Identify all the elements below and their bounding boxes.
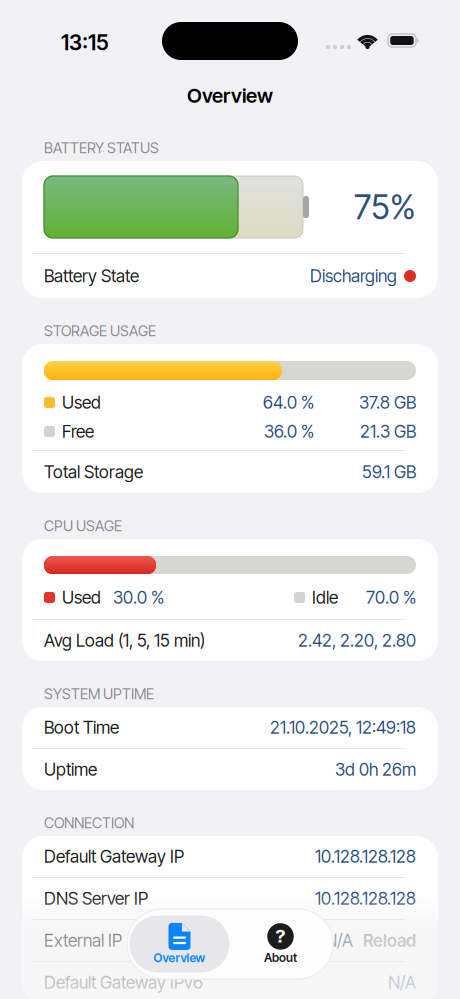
button[interactable]: Overview	[129, 915, 229, 972]
staticText: 3d 0h 26m	[335, 759, 416, 780]
staticText: Used	[62, 392, 101, 413]
staticText: BATTERY STATUS	[44, 139, 159, 157]
staticText: Free	[62, 421, 94, 442]
staticText: 13:15	[61, 30, 109, 55]
staticText: Overview	[153, 951, 205, 965]
staticText: ?	[275, 925, 285, 947]
staticText: 64.0 %	[263, 392, 314, 413]
staticText: 37.8 GB	[359, 392, 416, 413]
staticText: STORAGE USAGE	[44, 322, 156, 340]
staticText: CONNECTION	[44, 814, 134, 832]
staticText: 36.0 %	[264, 421, 314, 442]
button[interactable]: ?	[230, 915, 330, 972]
staticText: External IP	[44, 930, 122, 951]
staticText: N/A	[325, 930, 353, 951]
staticText: 2.42, 2.20, 2.80	[298, 630, 416, 651]
staticText: DNS Server IP	[44, 888, 148, 909]
staticText: Total Storage	[44, 462, 143, 482]
staticText: Default Gateway IP	[44, 846, 184, 867]
staticText: Discharging	[310, 266, 397, 286]
button[interactable]: Reload	[353, 930, 416, 951]
staticText: 21.10.2025, 12:49:18	[270, 717, 416, 738]
staticText: 21.3 GB	[360, 421, 416, 442]
staticText: CPU USAGE	[44, 517, 122, 535]
staticText: About	[264, 951, 297, 965]
staticText: SYSTEM UPTIME	[44, 685, 154, 703]
staticText: 30.0 %	[113, 587, 164, 608]
staticText: 10.128.128.128	[315, 846, 416, 867]
staticText: N/A	[388, 972, 416, 993]
staticText: Reload	[363, 930, 416, 951]
staticText: Avg Load (1, 5, 15 min)	[44, 630, 205, 651]
staticText: Default Gateway IPv6	[44, 972, 203, 993]
staticText: Uptime	[44, 759, 97, 780]
staticText: Battery State	[44, 266, 139, 286]
staticText: 59.1 GB	[362, 462, 416, 482]
staticText: Overview	[187, 84, 273, 107]
staticText: Idle	[312, 587, 338, 608]
staticText: 70.0 %	[366, 587, 416, 608]
staticText: Used	[62, 587, 101, 608]
staticText: 10.128.128.128	[315, 888, 416, 909]
staticText: Boot Time	[44, 717, 119, 738]
staticText: 75%	[354, 187, 416, 227]
